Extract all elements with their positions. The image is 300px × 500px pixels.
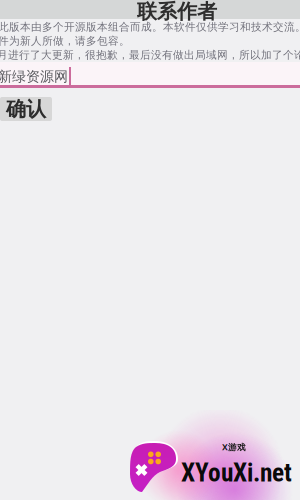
staticText: 月进行了大更新，很抱歉，最后没有做出局域网，所以加了个论坛 — [0, 48, 300, 62]
staticText: 联系作者 — [137, 0, 217, 24]
staticText: 新绿资源网 — [0, 68, 68, 85]
staticText: 件为新人所做，请多包容。 — [0, 34, 130, 48]
button[interactable]: 确认 — [0, 97, 52, 121]
staticText: 确认 — [6, 96, 46, 122]
staticText: X游戏 — [222, 441, 246, 453]
staticText: XYouXi.net — [181, 458, 292, 488]
staticText: 此版本由多个开源版本组合而成。本软件仅供学习和技术交流。本 — [0, 20, 300, 34]
